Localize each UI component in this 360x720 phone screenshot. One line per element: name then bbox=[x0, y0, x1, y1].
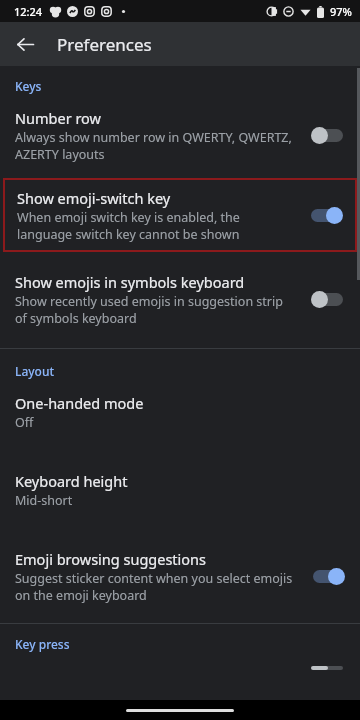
staticText: Layout bbox=[15, 363, 55, 379]
button[interactable]: Toggle on bbox=[311, 566, 345, 586]
button[interactable]: Toggle off bbox=[311, 289, 345, 309]
button[interactable]: Show emojis in symbols keyboard bbox=[0, 252, 360, 348]
staticText: Keyboard height bbox=[15, 471, 128, 491]
button[interactable]: Toggle on bbox=[309, 205, 343, 225]
button[interactable]: Number row bbox=[0, 100, 360, 178]
button[interactable]: Show emoji-switch key bbox=[5, 180, 355, 250]
button[interactable]: Back bbox=[8, 27, 42, 61]
staticText: Suggest sticker content when you select … bbox=[15, 570, 298, 603]
button[interactable]: Toggle off bbox=[311, 125, 345, 145]
staticText: Show emojis in symbols keyboard bbox=[15, 272, 245, 292]
button[interactable]: Toggle off bbox=[311, 666, 345, 670]
staticText: Keys bbox=[15, 78, 42, 94]
staticText: Always show number row in QWERTY, QWERTZ… bbox=[15, 129, 298, 162]
staticText: Show recently used emojis in suggestion … bbox=[15, 293, 298, 326]
button[interactable]: Keyboard height bbox=[0, 463, 360, 541]
staticText: Mid-short bbox=[15, 492, 73, 509]
staticText: Key press bbox=[15, 636, 70, 652]
staticText: Off bbox=[15, 414, 34, 431]
button[interactable]: One-handed mode bbox=[0, 385, 360, 463]
staticText: Number row bbox=[15, 108, 101, 128]
staticText: Emoji browsing suggestions bbox=[15, 549, 206, 569]
staticText: Show emoji-switch key bbox=[17, 188, 171, 208]
staticText: One-handed mode bbox=[15, 393, 144, 413]
staticText: 97% bbox=[330, 4, 352, 19]
staticText: When emoji switch key is enabled, the la… bbox=[17, 209, 296, 242]
button[interactable]: Sound on keypress bbox=[0, 658, 360, 700]
staticText: Preferences bbox=[57, 33, 152, 56]
staticText: 12:24 bbox=[14, 4, 43, 19]
button[interactable]: Emoji browsing suggestions bbox=[0, 541, 360, 623]
